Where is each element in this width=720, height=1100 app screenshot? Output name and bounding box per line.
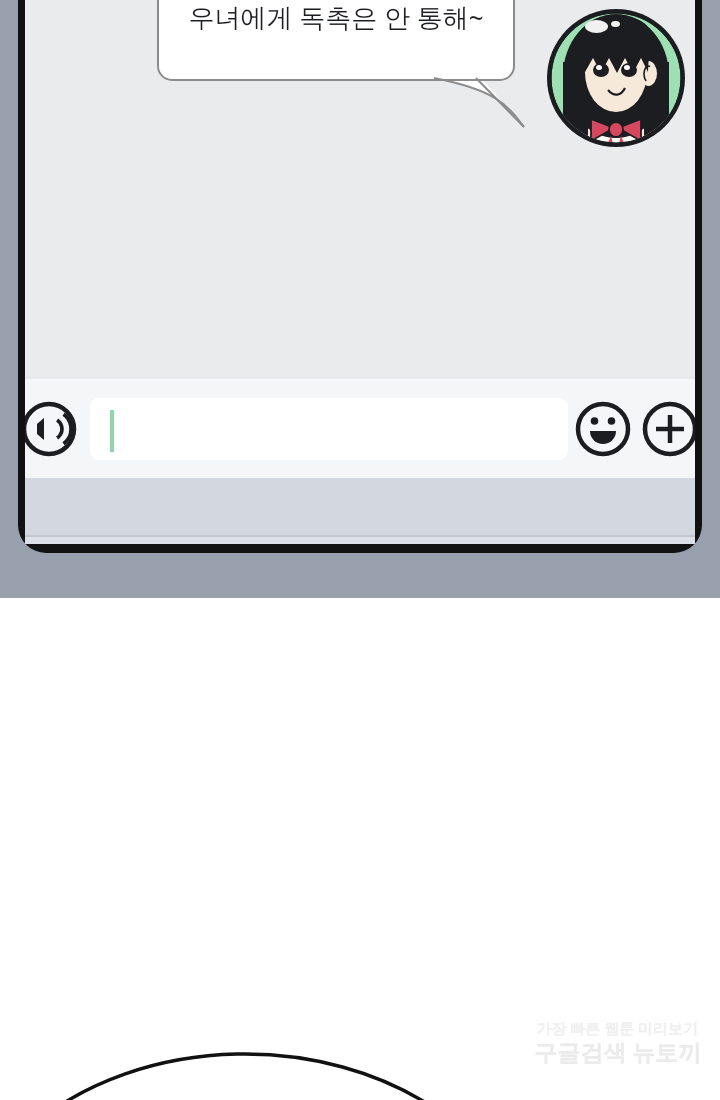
staticText: 가장 빠른 웹툰 미리보기: [536, 1018, 698, 1038]
button[interactable]: Emoji: [576, 400, 630, 458]
staticText: 우녀에게 독촉은 안 통해~: [188, 0, 484, 35]
staticText: 구글검색 뉴토끼: [534, 1036, 701, 1064]
button[interactable]: Voice message: [22, 400, 76, 458]
button[interactable]: Add attachment: [643, 400, 697, 458]
button[interactable]: Message input: [90, 398, 568, 460]
